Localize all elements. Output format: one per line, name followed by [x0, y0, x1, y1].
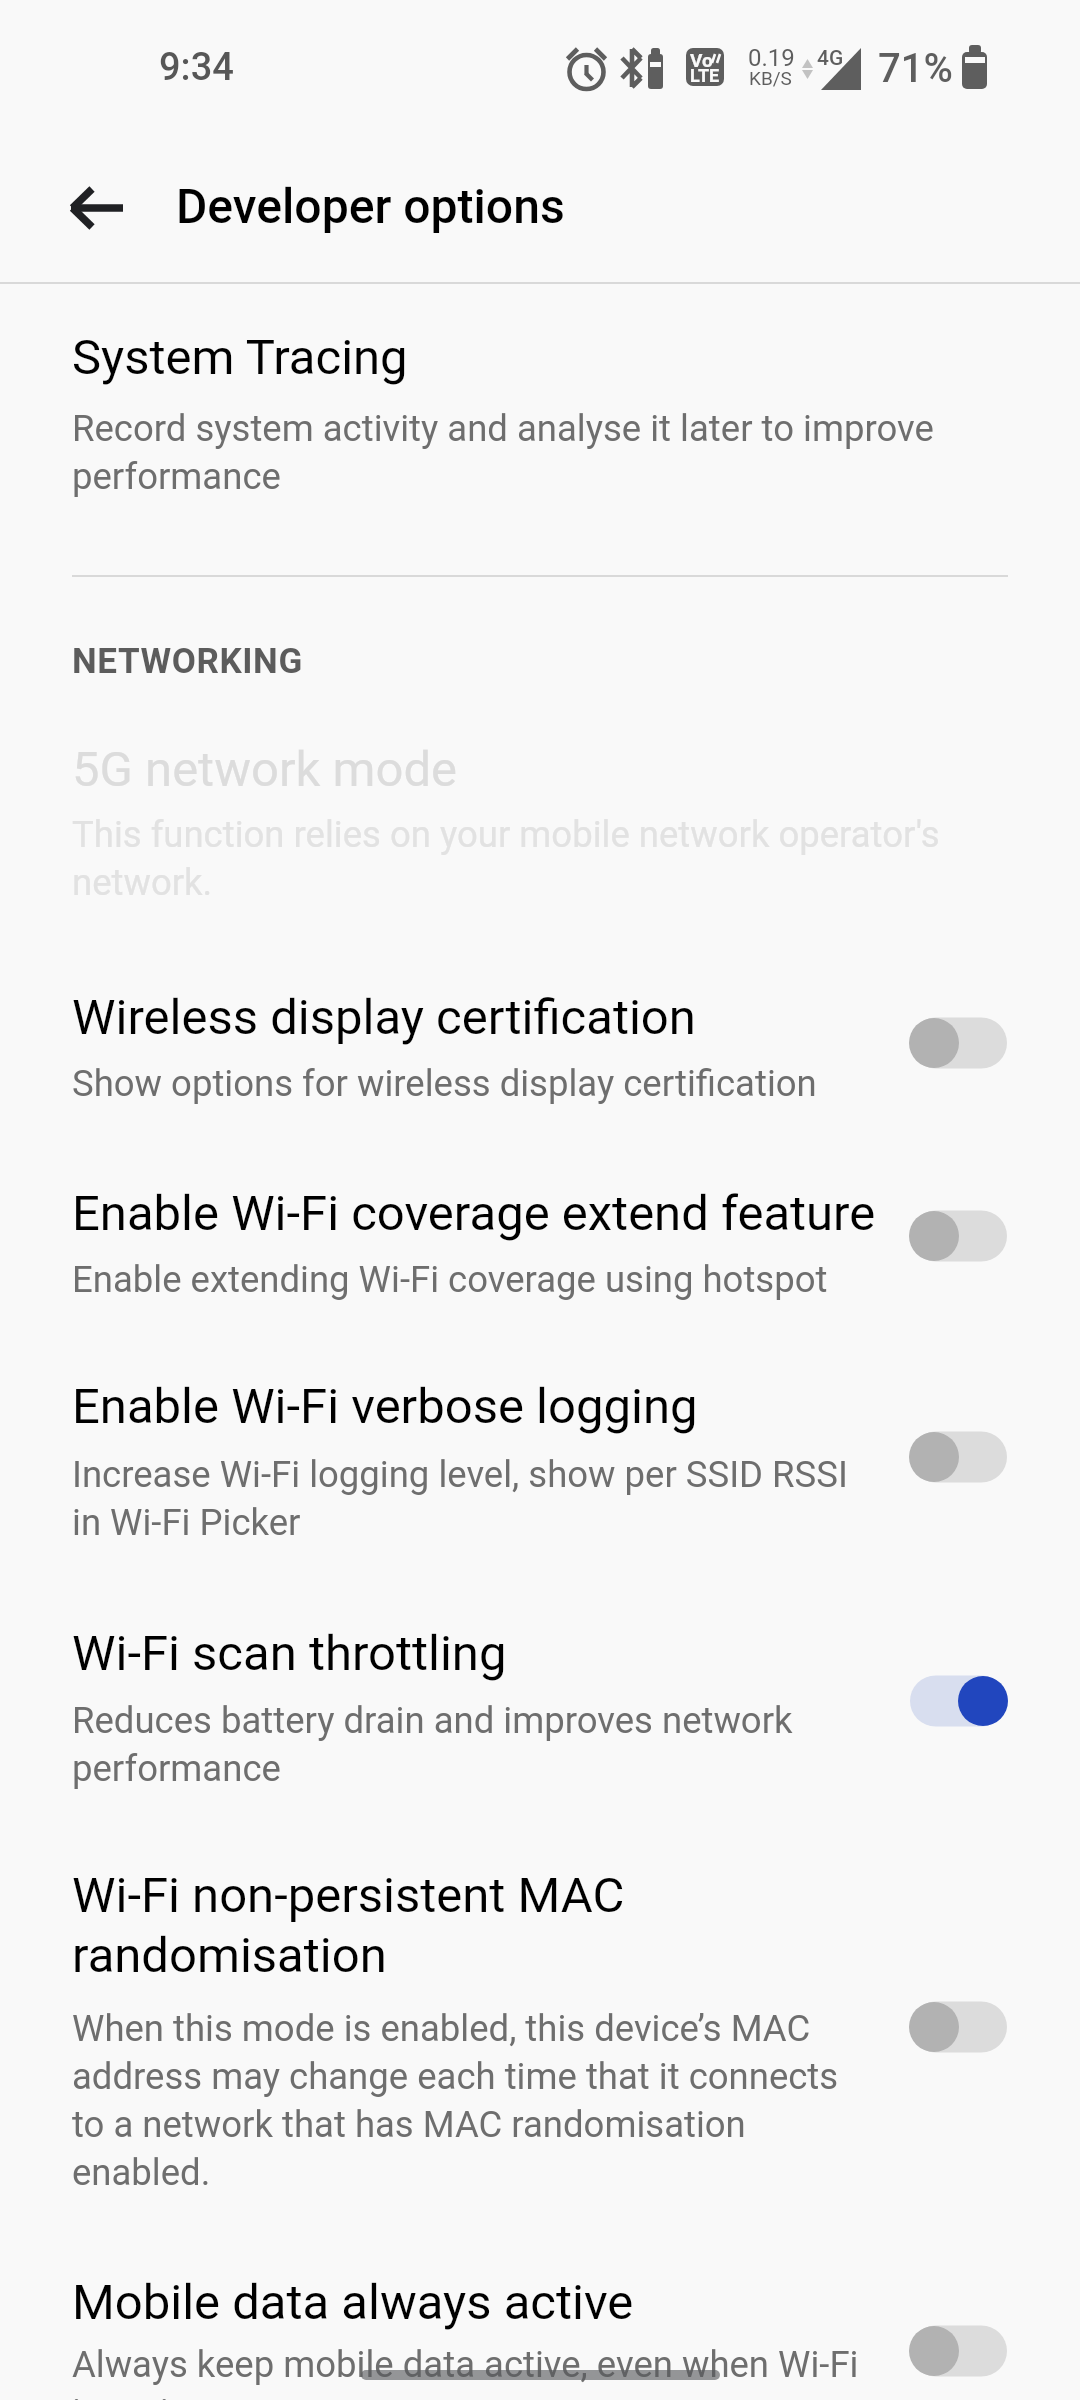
staticText: Reduces battery drain and improves netwo… — [72, 1695, 832, 1791]
staticText: 0.19 — [748, 44, 795, 72]
button[interactable]: Back — [44, 160, 140, 256]
button[interactable] — [0, 1335, 1080, 1570]
staticText: LTE — [690, 65, 720, 86]
staticText: Developer options — [176, 178, 565, 234]
button[interactable] — [0, 1580, 1080, 1820]
staticText: Record system activity and analyse it la… — [72, 403, 962, 499]
staticText: Enable Wi-Fi verbose logging — [72, 1376, 972, 1436]
staticText: System Tracing — [72, 327, 972, 387]
staticText: 9:34 — [159, 45, 234, 90]
button[interactable] — [0, 1140, 1080, 1325]
button[interactable]: Toggle, on — [898, 1667, 1020, 1735]
button[interactable] — [0, 940, 1080, 1130]
staticText: Always keep mobile data active, even whe… — [72, 2339, 882, 2400]
staticText: Enable extending Wi-Fi coverage using ho… — [72, 1254, 952, 1302]
staticText: 71% — [878, 45, 953, 92]
staticText: 4G — [817, 46, 844, 71]
staticText: This function relies on your mobile netw… — [72, 809, 952, 905]
staticText: Vo — [690, 49, 713, 71]
button[interactable]: Toggle, off — [898, 1423, 1020, 1491]
button[interactable]: Toggle, off — [898, 1993, 1020, 2061]
button[interactable]: Toggle, off — [898, 1202, 1020, 1270]
staticText: Wi-Fi scan throttling — [72, 1623, 972, 1683]
staticText: Show options for wireless display certif… — [72, 1058, 952, 1106]
staticText: Mobile data always active — [72, 2272, 972, 2332]
staticText: When this mode is enabled, this device’s… — [72, 2003, 862, 2195]
staticText: Wi-Fi non-persistent MAC randomisation — [72, 1865, 692, 1985]
button[interactable] — [0, 300, 1080, 550]
button[interactable]: Toggle, off — [898, 2317, 1020, 2385]
staticText: Wireless display certification — [72, 987, 972, 1047]
staticText: Enable Wi-Fi coverage extend feature — [72, 1183, 972, 1243]
button[interactable] — [0, 700, 1080, 930]
staticText: NETWORKING — [72, 641, 303, 682]
staticText: KB/S — [749, 67, 792, 89]
staticText: Increase Wi-Fi logging level, show per S… — [72, 1449, 862, 1545]
button[interactable]: Toggle, off — [898, 1009, 1020, 1077]
button[interactable] — [0, 2235, 1080, 2400]
button[interactable] — [0, 1830, 1080, 2225]
staticText: 5G network mode — [72, 739, 972, 799]
